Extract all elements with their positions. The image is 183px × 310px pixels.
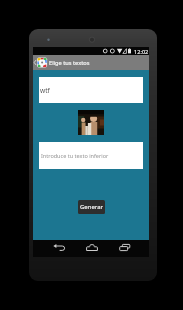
button[interactable]: Recent apps	[119, 242, 131, 254]
button[interactable]: Navigate up	[33, 55, 49, 70]
button[interactable]: Home	[86, 242, 98, 254]
staticText: Generar	[80, 203, 104, 211]
staticText: wtf	[40, 86, 50, 95]
button[interactable]: Back	[53, 242, 65, 254]
button[interactable]: wtf	[39, 77, 143, 103]
button[interactable]: Introduce tu texto inferior	[39, 142, 143, 169]
button[interactable]: Generar	[78, 200, 105, 214]
staticText: 12:02	[134, 48, 149, 56]
staticText: Elige tus textos	[49, 59, 90, 67]
staticText: Introduce tu texto inferior	[41, 152, 109, 159]
